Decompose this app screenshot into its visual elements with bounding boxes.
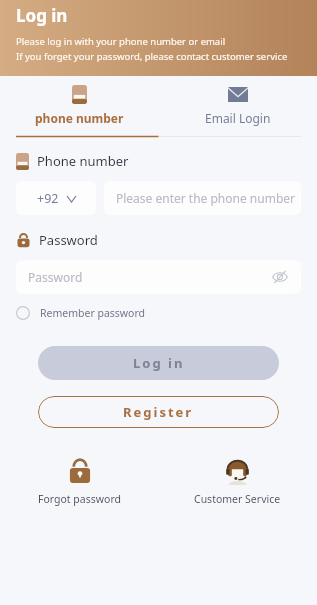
staticText: Remember password xyxy=(40,306,146,320)
button[interactable]: Forgot password xyxy=(34,454,125,510)
staticText: Phone number xyxy=(37,152,129,170)
button[interactable]: Please enter the phone number xyxy=(104,181,301,215)
staticText: Register xyxy=(123,403,194,421)
staticText: Log in xyxy=(16,4,68,27)
button[interactable]: Password xyxy=(16,260,301,294)
staticText: +92 xyxy=(37,190,59,207)
staticText: Forgot password xyxy=(38,492,121,506)
button[interactable]: +92 xyxy=(16,181,96,215)
staticText: Log in xyxy=(133,354,185,372)
button[interactable]: Show password xyxy=(269,266,291,288)
button[interactable]: phone number xyxy=(0,76,158,138)
staticText: Customer Service xyxy=(194,492,281,506)
button[interactable]: Log in xyxy=(38,346,279,380)
staticText: Please log in with your phone number or … xyxy=(16,35,226,48)
button[interactable]: Customer Service xyxy=(190,454,285,510)
staticText: Please enter the phone number xyxy=(116,190,296,206)
button[interactable]: Email Login xyxy=(158,76,317,138)
button[interactable]: Remember password xyxy=(16,302,146,324)
staticText: Password xyxy=(39,231,98,249)
staticText: Email Login xyxy=(205,110,271,126)
staticText: phone number xyxy=(35,110,124,126)
staticText: Password xyxy=(28,269,83,285)
button[interactable]: Register xyxy=(38,396,279,428)
staticText: If you forget your password, please cont… xyxy=(16,50,288,63)
